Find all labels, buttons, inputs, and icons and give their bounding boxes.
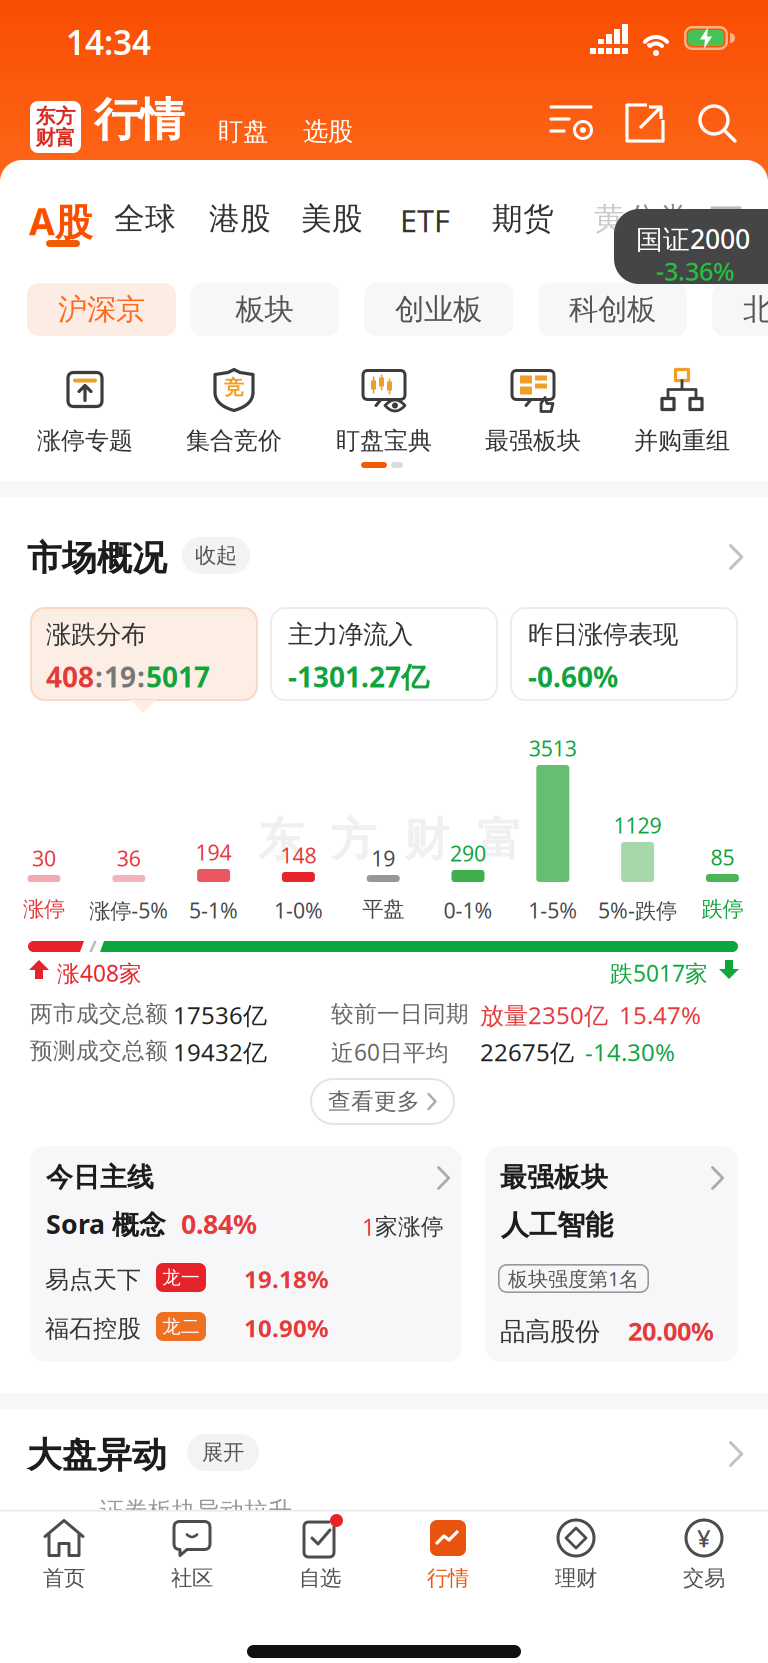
- button[interactable]: 选股: [303, 116, 353, 147]
- staticText: -3.36%: [656, 254, 735, 288]
- staticText: ETF: [400, 200, 450, 241]
- staticText: 1129: [614, 811, 662, 839]
- staticText: 22675亿: [480, 1036, 574, 1068]
- staticText: 1-0%: [274, 896, 323, 924]
- button[interactable]: 创业板: [364, 283, 513, 336]
- staticText: 福石控股: [45, 1314, 141, 1343]
- staticText: 0.84%: [181, 1206, 257, 1241]
- staticText: 查看更多: [328, 1088, 420, 1115]
- staticText: 较前一日同期: [331, 1000, 469, 1028]
- button[interactable]: 首页: [9, 1518, 119, 1591]
- button[interactable]: 沪深京: [27, 283, 176, 336]
- staticText: 涨停: [23, 896, 65, 922]
- staticText: 19: [371, 844, 395, 872]
- button[interactable]: 主力净流入: [270, 607, 498, 701]
- button[interactable]: 期货: [492, 200, 554, 238]
- staticText: 自选: [299, 1565, 341, 1591]
- button[interactable]: 美股: [301, 200, 363, 238]
- button[interactable]: 涨停专题: [15, 366, 155, 455]
- staticText: 国证2000: [636, 221, 750, 256]
- staticText: 最强板块: [485, 426, 581, 455]
- staticText: 19432亿: [173, 1036, 267, 1068]
- button[interactable]: 分享: [625, 103, 665, 143]
- staticText: 15.47%: [619, 999, 701, 1031]
- button[interactable]: 最强板块: [463, 366, 603, 455]
- button[interactable]: A股: [29, 196, 92, 246]
- button[interactable]: 涨跌分布: [30, 607, 258, 701]
- staticText: 平盘: [362, 896, 404, 922]
- staticText: 0-1%: [443, 896, 492, 924]
- button[interactable]: 查看更多: [310, 1078, 455, 1125]
- staticText: 3513: [529, 734, 577, 762]
- staticText: 选股: [303, 116, 353, 147]
- staticText: 分类: [627, 200, 689, 238]
- staticText: 理财: [555, 1565, 597, 1591]
- staticText: 85: [710, 843, 734, 871]
- button[interactable]: ETF: [400, 200, 450, 241]
- staticText: 408: [46, 658, 94, 695]
- staticText: 人工智能: [501, 1208, 613, 1242]
- button[interactable]: 展开: [187, 1434, 259, 1471]
- staticText: 行情: [94, 92, 184, 148]
- staticText: 今日主线: [46, 1161, 154, 1194]
- staticText: 财富: [35, 125, 75, 150]
- button[interactable]: 全球: [114, 200, 176, 238]
- staticText: 涨停-5%: [89, 896, 168, 924]
- button[interactable]: 盯盘: [218, 116, 268, 147]
- staticText: 放量2350亿: [480, 999, 608, 1031]
- button[interactable]: 搜索: [697, 103, 737, 143]
- button[interactable]: 竞: [164, 366, 304, 455]
- button[interactable]: 收起: [182, 537, 250, 574]
- staticText: 集合竞价: [186, 426, 282, 455]
- button[interactable]: 盯盘宝典: [314, 366, 454, 455]
- staticText: 创业板: [395, 291, 482, 327]
- button[interactable]: ¥: [649, 1518, 759, 1591]
- staticText: -1301.27亿: [288, 658, 429, 695]
- staticText: A股: [29, 196, 92, 246]
- staticText: 大盘异动: [27, 1434, 167, 1477]
- button[interactable]: 自选: [265, 1518, 375, 1591]
- button[interactable]: 理财: [521, 1518, 631, 1591]
- staticText: 1: [362, 1212, 375, 1242]
- staticText: 家涨停: [375, 1213, 444, 1241]
- staticText: 10.90%: [244, 1312, 329, 1344]
- button[interactable]: 最强板块: [485, 1146, 738, 1362]
- staticText: 148: [280, 841, 316, 869]
- staticText: 预测成交总额: [30, 1037, 168, 1065]
- staticText: 5017: [146, 658, 210, 695]
- button[interactable]: 板块: [190, 283, 339, 336]
- staticText: 194: [196, 838, 232, 866]
- staticText: 龙二: [162, 1315, 200, 1338]
- button[interactable]: 黄: [594, 200, 625, 238]
- staticText: 两市成交总额: [30, 1000, 168, 1028]
- staticText: 东方: [35, 104, 75, 128]
- staticText: 展开: [202, 1439, 244, 1466]
- staticText: 品高股份: [500, 1316, 600, 1347]
- button[interactable]: 行情: [393, 1518, 503, 1591]
- staticText: 社区: [171, 1565, 213, 1591]
- button[interactable]: 社区: [137, 1518, 247, 1591]
- button[interactable]: 昨日涨停表现: [510, 607, 738, 701]
- button[interactable]: 今日主线: [30, 1146, 462, 1362]
- button[interactable]: 更多分类: [712, 206, 740, 226]
- button[interactable]: 港股: [209, 200, 271, 238]
- button[interactable]: 分类: [627, 200, 689, 238]
- staticText: 竞: [224, 375, 244, 400]
- button[interactable]: 北交所: [712, 283, 768, 336]
- button[interactable]: 并购重组: [612, 366, 752, 455]
- button[interactable]: 科创板: [538, 283, 687, 336]
- staticText: 涨停专题: [37, 426, 133, 455]
- staticText: 全球: [114, 200, 176, 238]
- staticText: :: [137, 658, 145, 695]
- staticText: 17536亿: [173, 999, 267, 1031]
- staticText: 市场概况: [27, 537, 167, 580]
- staticText: ¥: [697, 1522, 711, 1554]
- staticText: 北交所: [743, 291, 768, 327]
- staticText: 板块强度第1名: [508, 1265, 639, 1292]
- staticText: -14.30%: [585, 1036, 675, 1068]
- staticText: 昨日涨停表现: [528, 619, 678, 650]
- button[interactable]: 列表设置: [550, 103, 596, 145]
- staticText: 沪深京: [58, 291, 145, 327]
- staticText: 美股: [301, 200, 363, 238]
- staticText: 收起: [195, 542, 237, 569]
